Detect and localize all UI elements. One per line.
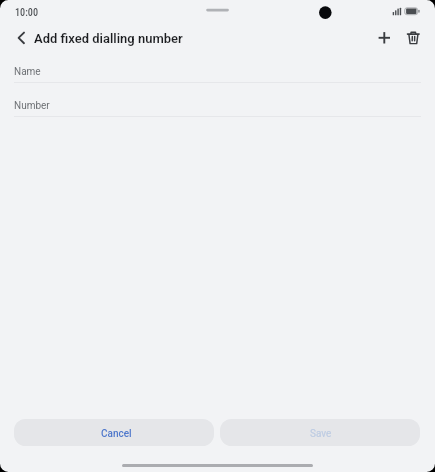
- staticText: Number: [14, 100, 50, 112]
- staticText: Name: [14, 66, 41, 78]
- button[interactable]: Navigate up: [5, 22, 37, 54]
- staticText: 10:00: [15, 7, 38, 19]
- button[interactable]: Add: [368, 22, 400, 54]
- button[interactable]: Number: [14, 92, 421, 117]
- staticText: Cancel: [101, 428, 132, 440]
- staticText: Save: [310, 428, 332, 440]
- button[interactable]: Delete: [397, 22, 429, 54]
- staticText: Add fixed dialling number: [34, 31, 183, 46]
- button[interactable]: Name: [14, 58, 421, 83]
- button[interactable]: Cancel: [14, 419, 214, 446]
- button[interactable]: Save: [220, 419, 420, 446]
